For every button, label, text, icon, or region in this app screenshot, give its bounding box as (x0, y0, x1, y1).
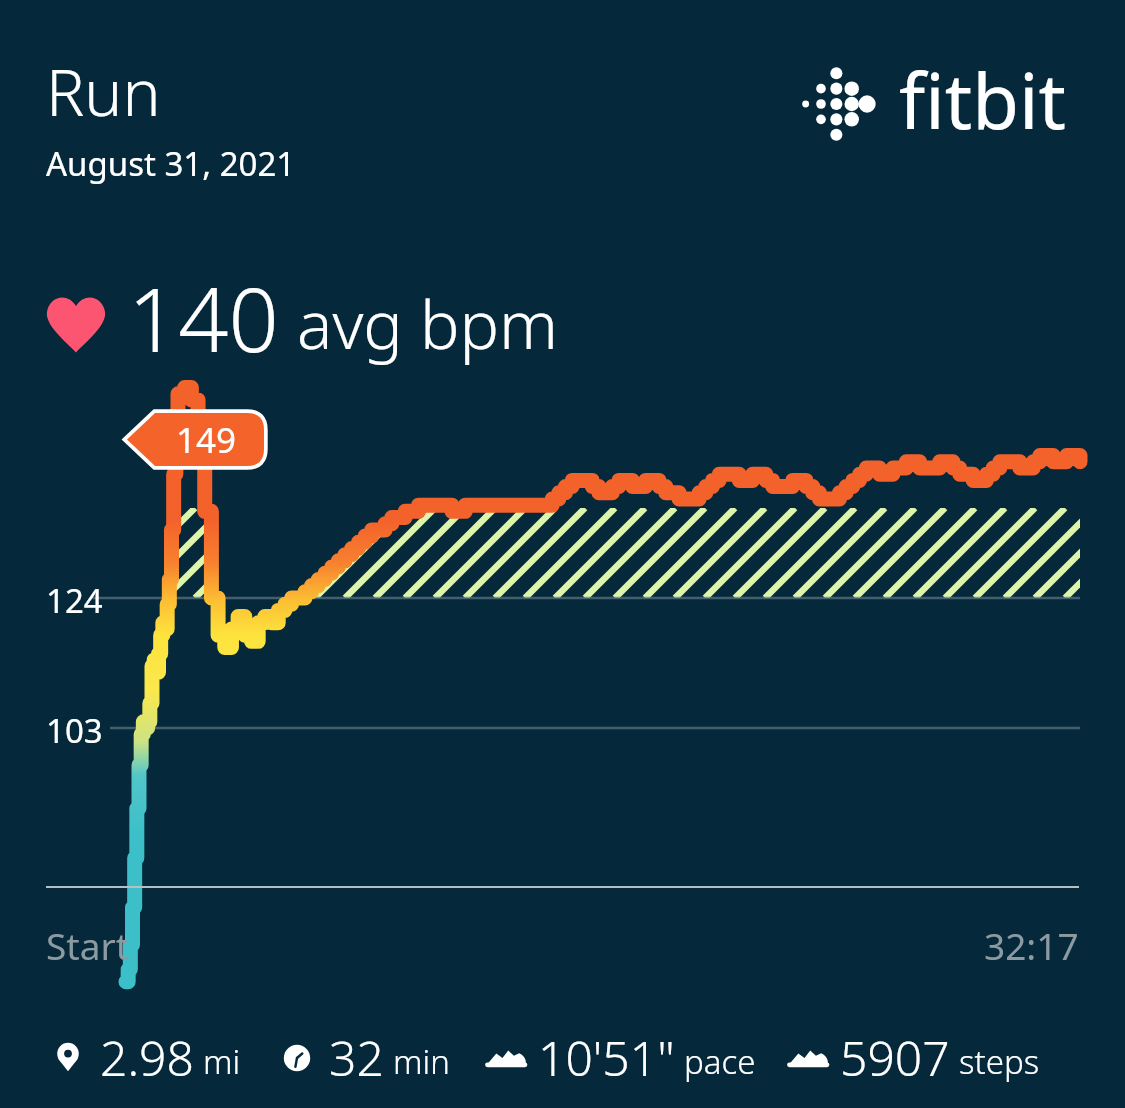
other: Distance (46, 1036, 90, 1080)
other: Steps (484, 1036, 528, 1080)
button[interactable]: Steps (786, 1025, 1040, 1090)
button[interactable]: Fitbit (795, 52, 1066, 156)
staticText: pace (684, 1039, 756, 1084)
staticText: 149 (176, 416, 237, 464)
staticText: 32:17 (984, 920, 1079, 970)
staticText: mi (203, 1039, 241, 1084)
staticText: Run (46, 48, 161, 135)
staticText: 140 (128, 258, 279, 378)
button[interactable]: Steps (484, 1025, 756, 1090)
other: Steps (786, 1036, 830, 1080)
button[interactable]: Duration (275, 1025, 450, 1090)
staticText: Start (46, 920, 130, 970)
staticText: August 31, 2021 (46, 141, 296, 186)
staticText: 5907 (840, 1025, 950, 1090)
other: Duration (275, 1036, 319, 1080)
staticText: 10'51" (538, 1025, 675, 1090)
staticText: min (393, 1039, 450, 1084)
staticText: 103 (46, 708, 103, 753)
staticText: fitbit (899, 48, 1066, 152)
staticText: 124 (46, 578, 103, 623)
button[interactable]: Distance (46, 1025, 241, 1090)
staticText: 32 (329, 1025, 384, 1090)
staticText: steps (959, 1039, 1040, 1084)
staticText: avg bpm (297, 278, 559, 368)
staticText: 2.98 (100, 1025, 194, 1090)
